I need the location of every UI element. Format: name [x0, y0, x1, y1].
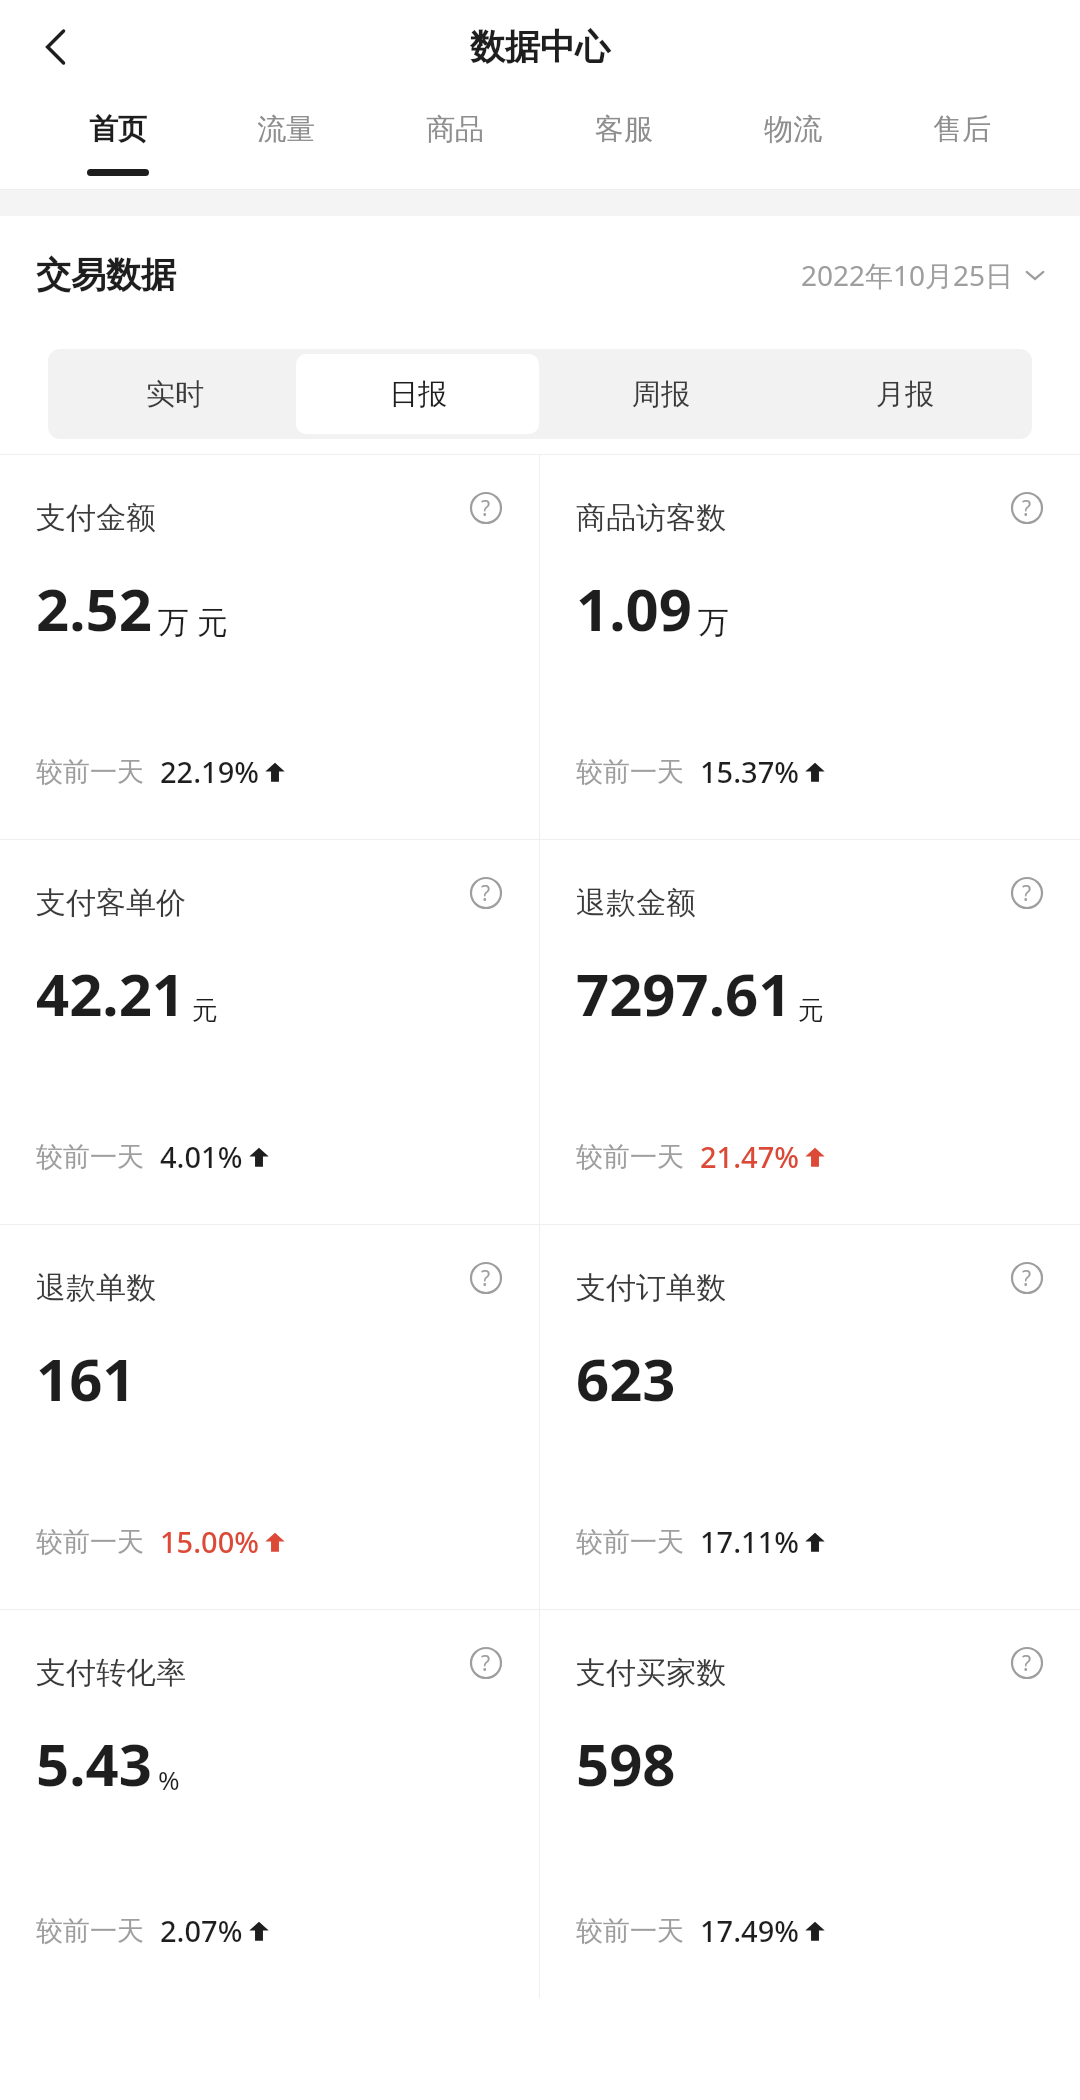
button[interactable]: 月报 [783, 354, 1027, 434]
staticText: 较前一天 [576, 1525, 684, 1559]
staticText: ? [481, 879, 491, 908]
button[interactable]: 商品 [370, 94, 539, 190]
staticText: ? [481, 1264, 491, 1293]
staticText: 元 [798, 994, 824, 1027]
staticText: 较前一天 [576, 1914, 684, 1948]
button[interactable]: 支付客单价 [0, 840, 539, 1224]
staticText: 5.43 [36, 1724, 152, 1803]
staticText: 22.19% [160, 752, 259, 791]
button[interactable]: 首页 [34, 94, 202, 190]
staticText: 周报 [632, 376, 690, 413]
staticText: 日报 [389, 376, 447, 413]
button[interactable]: 物流 [708, 94, 877, 190]
staticText: 15.37% [700, 752, 799, 791]
staticText: 较前一天 [36, 1525, 144, 1559]
staticText: 数据中心 [470, 25, 610, 69]
staticText: 流量 [257, 111, 315, 148]
button[interactable]: 退款金额 [540, 840, 1080, 1224]
staticText: 42.21 [36, 954, 186, 1033]
staticText: 较前一天 [36, 1914, 144, 1948]
staticText: 商品 [426, 111, 484, 148]
staticText: ? [1022, 879, 1032, 908]
button[interactable]: 客服 [539, 94, 708, 190]
staticText: ? [1022, 1264, 1032, 1293]
staticText: ? [1022, 494, 1032, 523]
staticText: 元 [192, 994, 218, 1027]
button[interactable]: 日报 [296, 354, 539, 434]
staticText: 17.11% [700, 1522, 799, 1561]
button[interactable]: Help: 支付买家数 [1004, 1640, 1050, 1686]
staticText: 支付金额 [36, 499, 156, 537]
staticText: % [158, 1762, 180, 1797]
staticText: 支付买家数 [576, 1654, 726, 1692]
staticText: 较前一天 [36, 1140, 144, 1174]
staticText: 15.00% [160, 1522, 259, 1561]
button[interactable]: 退款单数 [0, 1225, 539, 1609]
staticText: 万 元 [158, 600, 229, 642]
button[interactable]: Help: 退款单数 [463, 1255, 509, 1301]
staticText: 实时 [146, 376, 204, 413]
button[interactable]: 支付订单数 [540, 1225, 1080, 1609]
staticText: 支付转化率 [36, 1654, 186, 1692]
staticText: 退款金额 [576, 884, 696, 922]
staticText: ? [481, 1649, 491, 1678]
staticText: 4.01% [160, 1137, 243, 1176]
button[interactable]: Help: 支付转化率 [463, 1640, 509, 1686]
button[interactable]: Help: 支付金额 [463, 485, 509, 531]
staticText: 物流 [764, 111, 822, 148]
button[interactable]: 售后 [877, 94, 1046, 190]
button[interactable]: 支付金额 [0, 455, 539, 839]
button[interactable]: Help: 退款金额 [1004, 870, 1050, 916]
button[interactable]: 实时 [53, 354, 296, 434]
staticText: 首页 [89, 111, 147, 148]
staticText: 商品访客数 [576, 499, 726, 537]
staticText: 2022年10月25日 [801, 256, 1014, 294]
button[interactable]: 周报 [539, 354, 783, 434]
staticText: 7297.61 [576, 954, 792, 1033]
staticText: 623 [576, 1339, 676, 1418]
staticText: 21.47% [700, 1137, 799, 1176]
button[interactable]: 2022年10月25日 [801, 256, 1046, 294]
staticText: ? [1022, 1649, 1032, 1678]
staticText: 退款单数 [36, 1269, 156, 1307]
staticText: 2.52 [36, 569, 152, 648]
button[interactable]: 商品访客数 [540, 455, 1080, 839]
staticText: ? [481, 494, 491, 523]
staticText: 较前一天 [576, 1140, 684, 1174]
button[interactable]: 支付买家数 [540, 1610, 1080, 1998]
staticText: 万 [698, 603, 729, 642]
button[interactable]: Back [0, 0, 112, 94]
staticText: 月报 [876, 376, 934, 413]
staticText: 交易数据 [36, 253, 176, 297]
button[interactable]: Help: 支付客单价 [463, 870, 509, 916]
staticText: 17.49% [700, 1911, 799, 1950]
staticText: 支付订单数 [576, 1269, 726, 1307]
staticText: 客服 [595, 111, 653, 148]
button[interactable]: Help: 支付订单数 [1004, 1255, 1050, 1301]
staticText: 售后 [933, 111, 991, 148]
staticText: 较前一天 [576, 755, 684, 789]
button[interactable]: Help: 商品访客数 [1004, 485, 1050, 531]
staticText: 1.09 [576, 569, 692, 648]
button[interactable]: 流量 [202, 94, 370, 190]
staticText: 161 [36, 1339, 136, 1418]
staticText: 598 [576, 1724, 676, 1803]
staticText: 2.07% [160, 1911, 243, 1950]
staticText: 支付客单价 [36, 884, 186, 922]
button[interactable]: 支付转化率 [0, 1610, 539, 1998]
staticText: 较前一天 [36, 755, 144, 789]
